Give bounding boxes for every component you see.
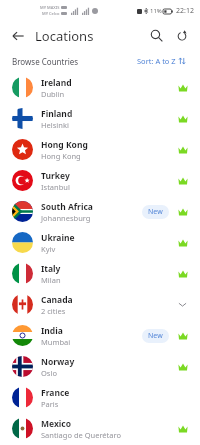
staticText: Mexico bbox=[41, 418, 72, 430]
staticText: Istanbul bbox=[41, 182, 70, 192]
staticText: Santiago de Querétaro bbox=[41, 430, 122, 440]
button[interactable]: Canada bbox=[0, 289, 200, 320]
button[interactable]: Ukraine bbox=[0, 227, 200, 258]
staticText: South Africa bbox=[41, 201, 93, 213]
button[interactable]: Premium location bbox=[175, 111, 190, 126]
button[interactable]: India bbox=[0, 320, 200, 351]
staticText: Turkey bbox=[41, 170, 70, 182]
staticText: Mumbai bbox=[41, 337, 71, 347]
staticText: Oslo bbox=[41, 368, 57, 378]
button[interactable]: Refresh bbox=[172, 26, 191, 45]
button[interactable]: Premium location bbox=[175, 328, 190, 343]
staticText: Canada bbox=[41, 294, 73, 306]
button[interactable]: France bbox=[0, 382, 200, 413]
staticText: Dublin bbox=[41, 89, 65, 99]
staticText: 22:12 bbox=[176, 6, 194, 16]
staticText: 11% bbox=[150, 7, 162, 15]
staticText: France bbox=[41, 387, 70, 399]
staticText: Norway bbox=[41, 356, 75, 368]
button[interactable]: Italy bbox=[0, 258, 200, 289]
staticText: Helsinki bbox=[41, 120, 69, 130]
staticText: Ireland bbox=[41, 77, 72, 89]
staticText: New bbox=[148, 207, 163, 217]
button[interactable]: Premium location bbox=[175, 204, 190, 219]
button[interactable]: Premium location bbox=[175, 142, 190, 157]
staticText: Browse Countries bbox=[12, 56, 79, 67]
staticText: New bbox=[148, 331, 163, 341]
staticText: Finland bbox=[41, 108, 73, 120]
staticText: Paris bbox=[41, 399, 59, 409]
staticText: Hong Kong bbox=[41, 139, 88, 151]
staticText: Milan bbox=[41, 275, 61, 285]
button[interactable]: Finland bbox=[0, 103, 200, 134]
button[interactable]: Turkey bbox=[0, 165, 200, 196]
button[interactable]: Expand cities bbox=[175, 297, 190, 312]
staticText: Johannesburg bbox=[41, 213, 91, 223]
button[interactable]: South Africa bbox=[0, 196, 200, 227]
button[interactable]: Premium location bbox=[175, 266, 190, 281]
button[interactable]: Back bbox=[9, 27, 27, 45]
button[interactable]: New bbox=[142, 205, 169, 219]
button[interactable]: Ireland bbox=[0, 72, 200, 103]
staticText: MY Celco bbox=[42, 11, 60, 16]
button[interactable]: Norway bbox=[0, 351, 200, 382]
staticText: Kyiv bbox=[41, 244, 56, 254]
staticText: 2 cities bbox=[41, 306, 66, 316]
button[interactable]: Sort: A to Z bbox=[135, 54, 188, 68]
button[interactable]: Hong Kong bbox=[0, 134, 200, 165]
button[interactable]: Premium location bbox=[175, 421, 190, 436]
button[interactable]: Mexico bbox=[0, 413, 200, 444]
staticText: India bbox=[41, 325, 63, 337]
staticText: Sort: A to Z bbox=[137, 56, 176, 66]
staticText: Ukraine bbox=[41, 232, 75, 244]
staticText: Hong Kong bbox=[41, 151, 81, 161]
button[interactable]: New bbox=[142, 329, 169, 343]
staticText: Locations bbox=[35, 27, 94, 45]
button[interactable]: Premium location bbox=[175, 80, 190, 95]
button[interactable]: Premium location bbox=[175, 359, 190, 374]
staticText: MY MAXIS bbox=[40, 5, 60, 10]
button[interactable]: Premium location bbox=[175, 235, 190, 250]
button[interactable]: Premium location bbox=[175, 173, 190, 188]
staticText: Italy bbox=[41, 263, 61, 275]
button[interactable]: Search bbox=[147, 26, 166, 45]
